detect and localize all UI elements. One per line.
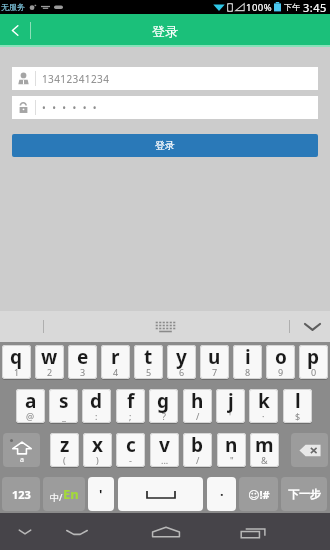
staticText: ... [161, 454, 169, 466]
staticText: · [220, 485, 224, 503]
button[interactable]: 中/ [43, 477, 85, 511]
staticText: p [307, 345, 320, 370]
button[interactable]: Hide keyboard [5, 513, 45, 550]
button[interactable]: g [149, 389, 178, 423]
staticText: ' [99, 485, 103, 503]
button[interactable]: d [82, 389, 111, 423]
button[interactable]: p [299, 345, 328, 379]
staticText: t [144, 345, 153, 370]
button[interactable]: ' [88, 477, 114, 511]
button[interactable]: • • • • • • [12, 96, 318, 119]
button[interactable]: u [200, 345, 229, 379]
button[interactable]: c [116, 433, 145, 467]
button[interactable]: j [216, 389, 245, 423]
staticText: q [10, 345, 23, 370]
button[interactable]: y [167, 345, 196, 379]
button[interactable]: 下一步 [281, 477, 327, 511]
staticText: 3 [80, 366, 86, 378]
staticText: k [258, 389, 270, 414]
button[interactable]: Backspace [291, 433, 328, 467]
button[interactable]: v [150, 433, 179, 467]
button[interactable]: s [49, 389, 78, 423]
staticText: 登录 [152, 23, 178, 39]
staticText: 9 [278, 366, 284, 378]
staticText: 1 [14, 366, 20, 378]
staticText: b [191, 433, 204, 458]
staticText: 3:45 [303, 0, 327, 14]
staticText: r [111, 345, 120, 370]
staticText: $ [295, 410, 301, 422]
button[interactable]: Shift [3, 433, 40, 467]
button[interactable]: q [2, 345, 31, 379]
button[interactable]: Home [146, 513, 186, 550]
staticText: ? [162, 410, 166, 422]
button[interactable]: ☺!# [239, 477, 278, 511]
staticText: 5 [146, 366, 152, 378]
button[interactable]: 123 [2, 477, 40, 511]
button[interactable]: r [101, 345, 130, 379]
staticText: z [60, 433, 70, 458]
staticText: 100% [246, 1, 273, 14]
staticText: ( [63, 454, 66, 466]
staticText: g [157, 389, 170, 414]
button[interactable]: 13412341234 [12, 67, 318, 90]
staticText: 0 [311, 366, 317, 378]
button[interactable]: w [35, 345, 64, 379]
button[interactable]: i [233, 345, 262, 379]
staticText: n [225, 433, 238, 458]
staticText: v [159, 433, 170, 458]
staticText: i [245, 345, 251, 370]
button[interactable]: f [116, 389, 145, 423]
staticText: ; [129, 410, 132, 422]
button[interactable]: Space [118, 477, 203, 511]
button[interactable]: Hide keyboard [298, 314, 326, 340]
button[interactable]: · [207, 477, 236, 511]
staticText: c [126, 433, 136, 458]
button[interactable]: e [68, 345, 97, 379]
staticText: s [59, 389, 69, 414]
staticText: 6 [179, 366, 185, 378]
staticText: : [95, 410, 98, 422]
button[interactable]: o [266, 345, 295, 379]
staticText: h [191, 389, 204, 414]
staticText: ☺!# [248, 487, 270, 502]
staticText: 13412341234 [42, 72, 110, 86]
staticText: o [275, 345, 287, 370]
staticText: 登录 [155, 139, 175, 152]
button[interactable]: Back [57, 513, 97, 550]
staticText: y [176, 345, 187, 370]
staticText: / [196, 454, 200, 466]
button[interactable]: l [283, 389, 312, 423]
staticText: ) [96, 454, 99, 466]
staticText: ' [229, 410, 232, 422]
staticText: a [20, 455, 24, 465]
button[interactable]: h [183, 389, 212, 423]
staticText: 4 [113, 366, 119, 378]
staticText: · [262, 410, 265, 422]
staticText: 7 [212, 366, 218, 378]
staticText: j [228, 389, 234, 414]
button[interactable]: b [183, 433, 212, 467]
button[interactable]: 登录 [12, 134, 318, 157]
staticText: 下一步 [288, 487, 321, 501]
staticText: En [63, 485, 79, 503]
button[interactable]: Recent apps [234, 513, 274, 550]
button[interactable]: Back [0, 14, 30, 47]
button[interactable]: z [50, 433, 79, 467]
staticText: d [90, 389, 103, 414]
staticText: & [261, 454, 268, 466]
button[interactable]: m [250, 433, 279, 467]
staticText: " [230, 454, 234, 466]
button[interactable]: n [217, 433, 246, 467]
staticText: / [196, 410, 200, 422]
button[interactable]: x [83, 433, 112, 467]
button[interactable]: a [16, 389, 45, 423]
button[interactable]: k [249, 389, 278, 423]
staticText: 下午 [284, 2, 300, 12]
button[interactable]: t [134, 345, 163, 379]
staticText: 8 [245, 366, 251, 378]
button[interactable]: Keyboard [150, 316, 180, 338]
staticText: w [41, 345, 58, 370]
staticText: a [25, 389, 37, 414]
staticText: f [127, 389, 135, 414]
